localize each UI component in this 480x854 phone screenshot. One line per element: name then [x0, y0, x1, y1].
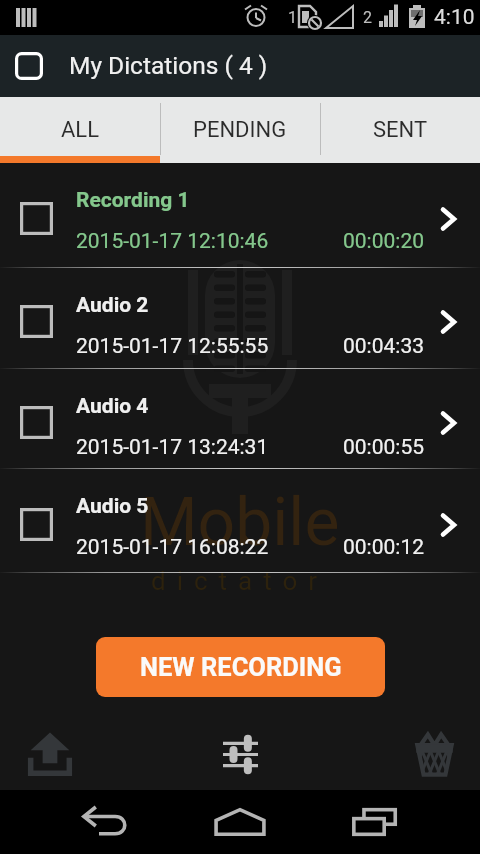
staticText: 2015-01-17 13:24:31	[76, 435, 269, 460]
button[interactable]: PENDING	[160, 97, 320, 163]
staticText: dictator	[151, 566, 329, 596]
staticText: SENT	[373, 117, 428, 143]
staticText: 00:00:55	[343, 435, 424, 460]
staticText: 00:00:20	[343, 229, 424, 254]
button[interactable]: Back	[60, 790, 150, 854]
staticText: 00:00:12	[343, 535, 424, 560]
staticText: ALL	[61, 117, 100, 143]
staticText: My Dictations ( 4 )	[69, 51, 268, 80]
button[interactable]: Audio 2	[0, 268, 480, 369]
button[interactable]: Upload	[4, 728, 96, 780]
button[interactable]: ALL	[0, 97, 160, 163]
staticText: Audio 4	[76, 394, 149, 419]
staticText: 00:04:33	[343, 334, 424, 359]
staticText: 2015-01-17 16:08:22	[76, 535, 269, 560]
staticText: PENDING	[193, 117, 287, 143]
staticText: Audio 5	[76, 494, 149, 519]
button[interactable]: Recording 1	[0, 163, 480, 268]
staticText: 2015-01-17 12:10:46	[76, 229, 269, 254]
button[interactable]: Audio 4	[0, 369, 480, 469]
staticText: 2015-01-17 12:55:55	[76, 334, 269, 359]
staticText: 4:10	[434, 5, 475, 30]
button[interactable]: Delete	[388, 728, 480, 780]
button[interactable]: Home	[195, 790, 285, 854]
staticText: 2	[363, 8, 372, 27]
staticText: Recording 1	[76, 188, 190, 213]
button[interactable]: Recents	[330, 790, 420, 854]
staticText: 1	[288, 8, 297, 27]
staticText: Audio 2	[76, 293, 149, 318]
button[interactable]: SENT	[320, 97, 480, 163]
button[interactable]: Select all	[14, 51, 44, 81]
staticText: NEW RECORDING	[140, 652, 342, 682]
button[interactable]: Audio 5	[0, 469, 480, 573]
button[interactable]: NEW RECORDING	[96, 637, 385, 697]
button[interactable]: Settings	[194, 728, 286, 780]
staticText: Mobile	[140, 484, 340, 561]
